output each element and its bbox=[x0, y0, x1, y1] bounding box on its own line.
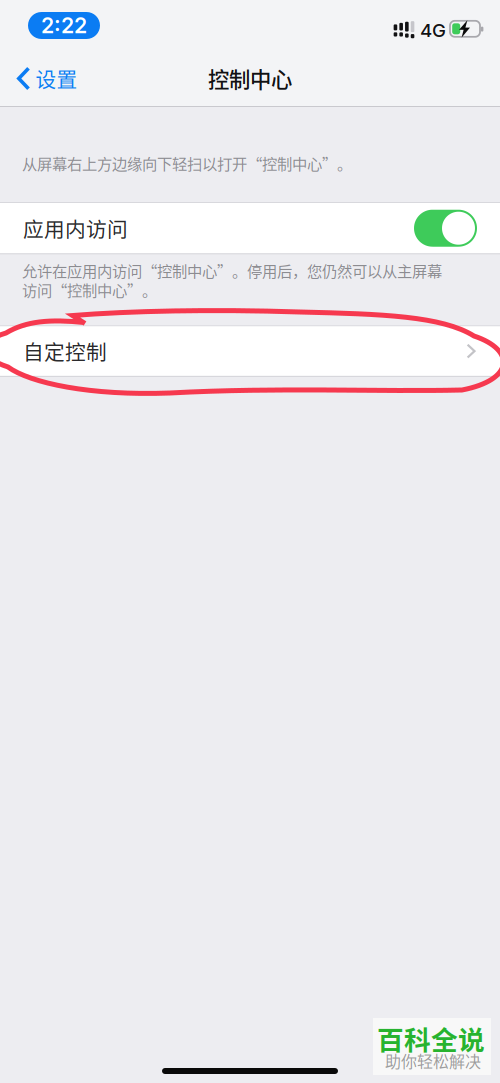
button[interactable]: 自定控制 bbox=[0, 326, 500, 377]
staticText: 助你轻松解决 bbox=[385, 1049, 481, 1072]
staticText: 应用内访问 bbox=[23, 213, 128, 243]
button[interactable]: 应用内访问 bbox=[0, 202, 500, 254]
staticText: 自定控制 bbox=[23, 336, 107, 366]
staticText: 4G bbox=[420, 19, 446, 42]
staticText: 百科全说 bbox=[377, 1019, 485, 1058]
staticText: 访问“控制中心”。 bbox=[22, 278, 157, 301]
staticText: 允许在应用内访问“控制中心”。停用后，您仍然可以从主屏幕 bbox=[22, 259, 442, 281]
staticText: 设置 bbox=[35, 63, 77, 93]
staticText: 2:22 bbox=[41, 13, 87, 38]
staticText: 控制中心 bbox=[208, 63, 292, 94]
staticText: 从屏幕右上方边缘向下轻扫以打开“控制中心”。 bbox=[22, 152, 352, 174]
button[interactable]: 设置 bbox=[0, 55, 77, 101]
